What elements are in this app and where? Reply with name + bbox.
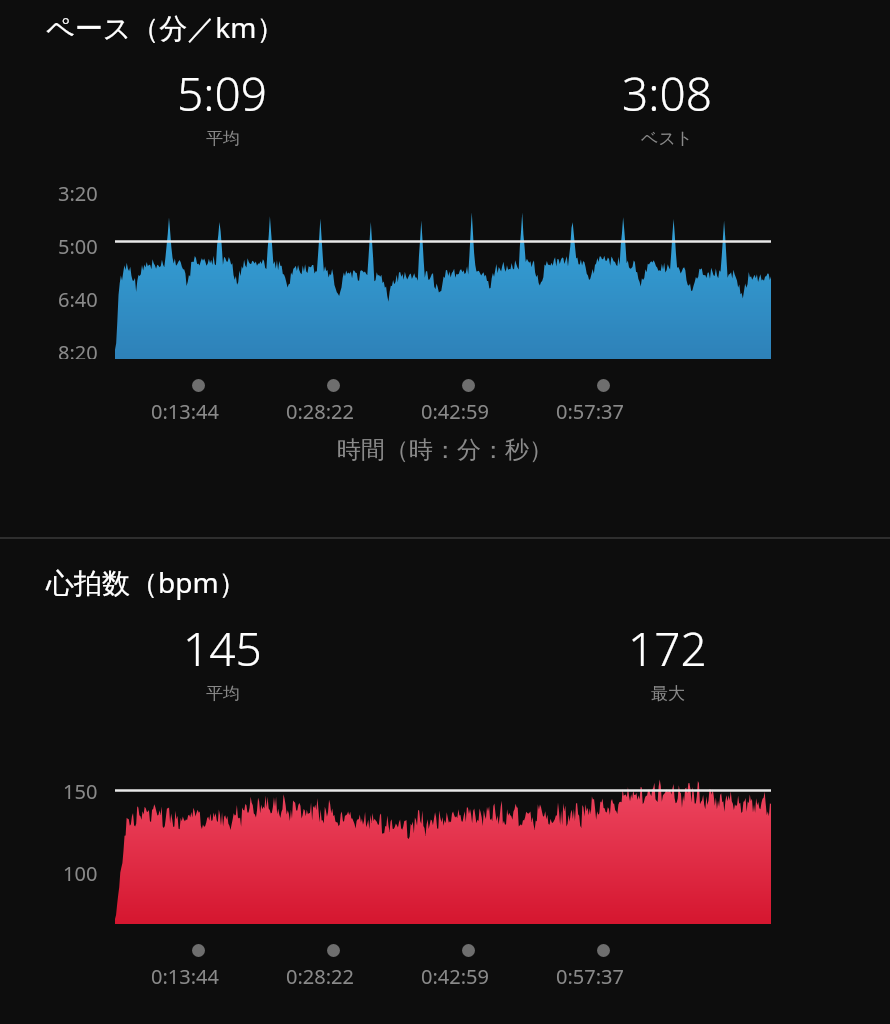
staticText: 5:00 [58,233,98,260]
staticText: 172 [628,617,707,680]
staticText: 150 [63,778,98,805]
staticText: 0:42:59 [421,963,489,990]
staticText: 6:40 [58,286,98,313]
button[interactable]: ペース（分／km） [0,0,890,537]
staticText: 平均 [206,128,240,149]
staticText: 0:42:59 [421,398,489,425]
staticText: 8:20 [58,339,98,359]
staticText: 3:08 [622,62,713,125]
staticText: ベスト [641,128,694,149]
staticText: 最大 [651,683,685,704]
staticText: 0:57:37 [556,398,624,425]
staticText: 5:09 [177,62,268,125]
staticText: 145 [183,617,262,680]
staticText: 時間（時：分：秒） [337,435,553,465]
button[interactable]: 心拍数（bpm） [0,539,890,1024]
staticText: 100 [63,860,98,887]
staticText: 0:57:37 [556,963,624,990]
staticText: 平均 [206,683,240,704]
staticText: 3:20 [58,180,98,207]
staticText: 0:28:22 [286,398,354,425]
staticText: 0:13:44 [151,398,219,425]
staticText: 心拍数（bpm） [46,563,247,601]
staticText: 0:13:44 [151,963,219,990]
staticText: ペース（分／km） [46,8,285,46]
staticText: 0:28:22 [286,963,354,990]
